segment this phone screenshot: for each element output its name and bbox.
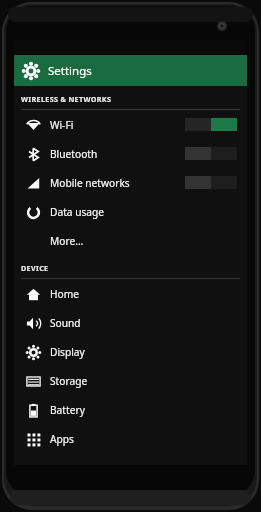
staticText: Apps — [50, 432, 74, 446]
staticText: More... — [50, 234, 84, 248]
staticText: Sound — [50, 316, 81, 330]
button[interactable]: Bluetooth switch — [185, 147, 237, 160]
button[interactable]: Wi-Fi — [14, 110, 247, 139]
button[interactable]: Home — [14, 279, 247, 308]
button[interactable]: Apps — [14, 424, 247, 453]
button[interactable]: Bluetooth — [14, 139, 247, 168]
staticText: Wi-Fi — [50, 118, 74, 132]
staticText: Data usage — [50, 205, 105, 219]
button[interactable]: More... — [14, 226, 247, 255]
button[interactable]: Storage — [14, 366, 247, 395]
staticText: Battery — [50, 403, 85, 417]
button[interactable]: Mobile networks switch — [185, 176, 237, 189]
staticText: Storage — [50, 374, 88, 388]
button[interactable]: Mobile networks — [14, 168, 247, 197]
staticText: Display — [50, 345, 85, 359]
button[interactable]: Battery — [14, 395, 247, 424]
button[interactable]: Sound — [14, 308, 247, 337]
button[interactable]: Settings — [14, 55, 247, 86]
button[interactable]: Data usage — [14, 197, 247, 226]
staticText: Settings — [48, 63, 92, 79]
staticText: Mobile networks — [50, 176, 130, 190]
button[interactable]: Display — [14, 337, 247, 366]
staticText: Bluetooth — [50, 147, 98, 161]
staticText: DEVICE — [21, 263, 49, 273]
staticText: Home — [50, 287, 79, 301]
staticText: WIRELESS & NETWORKS — [21, 94, 112, 104]
button[interactable]: Wi-Fi switch — [185, 118, 237, 131]
